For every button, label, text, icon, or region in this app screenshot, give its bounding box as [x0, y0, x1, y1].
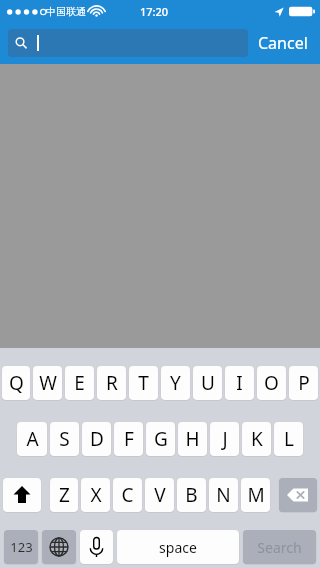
- button[interactable]: Cancel: [250, 26, 316, 60]
- staticText: Cancel: [258, 32, 308, 54]
- button[interactable]: Z: [50, 478, 78, 512]
- button[interactable]: Search: [243, 530, 316, 564]
- staticText: C: [121, 482, 134, 508]
- button[interactable]: F: [114, 422, 143, 456]
- button[interactable]: Backspace: [279, 478, 317, 512]
- staticText: K: [251, 426, 263, 452]
- button[interactable]: B: [177, 478, 206, 512]
- staticText: T: [138, 370, 149, 396]
- staticText: 123: [10, 538, 33, 556]
- button[interactable]: K: [242, 422, 271, 456]
- staticText: X: [90, 482, 102, 508]
- button[interactable]: R: [97, 366, 126, 400]
- staticText: L: [284, 426, 294, 452]
- staticText: F: [124, 426, 134, 452]
- staticText: H: [185, 426, 200, 452]
- staticText: I: [236, 370, 243, 396]
- button[interactable]: D: [82, 422, 111, 456]
- button[interactable]: Next keyboard: [42, 530, 76, 564]
- button[interactable]: J: [210, 422, 239, 456]
- button[interactable]: T: [129, 366, 158, 400]
- staticText: O: [264, 370, 279, 396]
- staticText: R: [106, 370, 118, 396]
- button[interactable]: N: [209, 478, 238, 512]
- button[interactable]: C: [113, 478, 142, 512]
- button[interactable]: Q: [2, 366, 30, 400]
- staticText: J: [222, 426, 228, 452]
- staticText: 17:20: [140, 4, 169, 19]
- button[interactable]: I: [225, 366, 254, 400]
- button[interactable]: L: [274, 422, 303, 456]
- staticText: D: [90, 426, 104, 452]
- button[interactable]: H: [178, 422, 207, 456]
- staticText: Y: [170, 370, 181, 396]
- button[interactable]: U: [193, 366, 222, 400]
- button[interactable]: G: [146, 422, 175, 456]
- button[interactable]: Y: [161, 366, 190, 400]
- button[interactable]: 123: [4, 530, 38, 564]
- button[interactable]: M: [241, 478, 270, 512]
- staticText: 中国联通: [46, 5, 86, 18]
- button[interactable]: Search: [8, 29, 248, 57]
- staticText: P: [298, 370, 310, 396]
- staticText: U: [201, 370, 215, 396]
- button[interactable]: W: [33, 366, 62, 400]
- button[interactable]: S: [50, 422, 79, 456]
- staticText: V: [154, 482, 166, 508]
- staticText: Q: [9, 370, 24, 396]
- button[interactable]: E: [65, 366, 94, 400]
- button[interactable]: Shift: [3, 478, 41, 512]
- button[interactable]: A: [17, 422, 47, 456]
- button[interactable]: Dictation: [80, 530, 113, 564]
- staticText: A: [26, 426, 39, 452]
- staticText: W: [39, 370, 57, 396]
- staticText: Z: [59, 482, 70, 508]
- button[interactable]: space: [117, 530, 239, 564]
- staticText: M: [247, 482, 265, 508]
- staticText: N: [216, 482, 231, 508]
- staticText: Search: [257, 538, 302, 557]
- staticText: S: [59, 426, 70, 452]
- staticText: space: [159, 538, 197, 557]
- staticText: G: [154, 426, 168, 452]
- button[interactable]: V: [145, 478, 174, 512]
- staticText: E: [74, 370, 85, 396]
- button[interactable]: X: [81, 478, 110, 512]
- staticText: B: [185, 482, 198, 508]
- button[interactable]: O: [257, 366, 286, 400]
- other: Search: [15, 37, 27, 49]
- button[interactable]: P: [289, 366, 318, 400]
